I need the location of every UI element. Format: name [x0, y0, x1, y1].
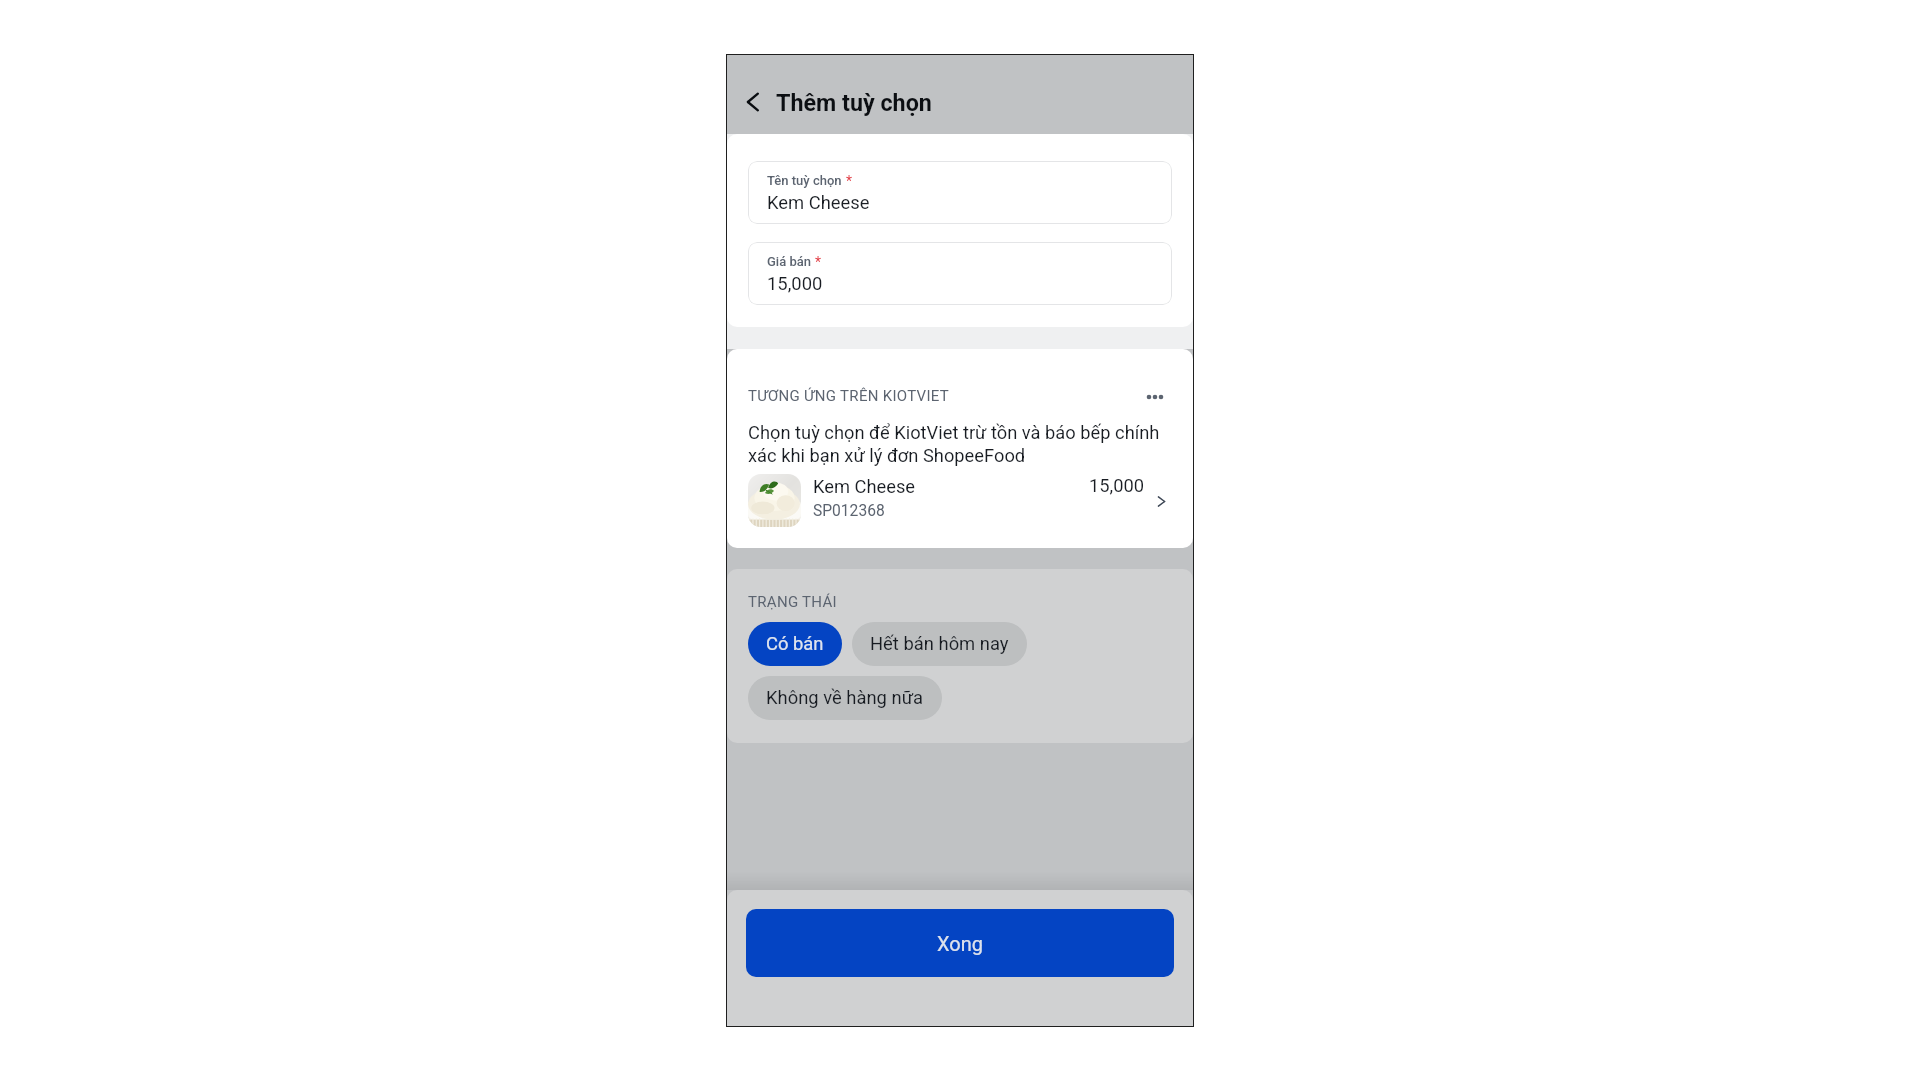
staticText: 15,000 [767, 273, 823, 295]
staticText: Xong [937, 932, 984, 955]
staticText: Có bán [766, 633, 824, 655]
staticText: TƯƠNG ỨNG TRÊN KIOTVIET [748, 387, 950, 405]
button[interactable]: Giá bán [748, 242, 1172, 305]
button[interactable]: Back [743, 90, 767, 114]
staticText: * [815, 254, 822, 270]
staticText: TRẠNG THÁI [748, 593, 837, 611]
staticText: Không về hàng nữa [766, 687, 924, 709]
button[interactable]: More options [1142, 384, 1168, 410]
staticText: 15,000 [1089, 475, 1145, 496]
staticText: SP012368 [813, 502, 885, 520]
button[interactable]: Tên tuỳ chọn [748, 161, 1172, 224]
staticText: Thêm tuỳ chọn [776, 89, 932, 116]
staticText: Giá bán [767, 254, 811, 269]
staticText: Hết bán hôm nay [870, 633, 1009, 655]
staticText: Kem Cheese [813, 476, 916, 497]
button[interactable]: Không về hàng nữa [748, 676, 942, 720]
button[interactable]: Xong [746, 909, 1174, 977]
staticText: Chọn tuỳ chọn để KiotViet trừ tồn và báo… [748, 422, 1172, 467]
button[interactable]: Có bán [748, 622, 842, 666]
staticText: * [846, 173, 853, 189]
button[interactable]: Hết bán hôm nay [852, 622, 1027, 666]
staticText: Kem Cheese [767, 192, 870, 214]
staticText: Tên tuỳ chọn [767, 173, 842, 188]
button[interactable]: Kem Cheese [748, 474, 1172, 530]
